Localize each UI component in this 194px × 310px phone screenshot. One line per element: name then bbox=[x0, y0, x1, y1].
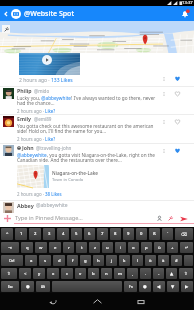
button[interactable]: g bbox=[80, 255, 91, 266]
button[interactable]: 2 bbox=[29, 228, 41, 240]
button[interactable]: 7 bbox=[97, 228, 108, 240]
button[interactable]: n bbox=[101, 268, 112, 279]
button[interactable]: Like bbox=[173, 117, 182, 126]
button[interactable]: John bbox=[0, 144, 194, 197]
staticText: e bbox=[54, 245, 57, 251]
button[interactable]: Back bbox=[43, 293, 63, 310]
button[interactable]: ü bbox=[154, 242, 165, 253]
button[interactable]: 4 bbox=[57, 228, 69, 240]
button[interactable]: Philip bbox=[0, 87, 194, 114]
button[interactable]: Niagara-on-the-Lake bbox=[17, 165, 98, 188]
button[interactable]: Emily bbox=[0, 115, 194, 142]
button[interactable]: x bbox=[47, 268, 59, 279]
button[interactable]: d bbox=[53, 255, 65, 266]
button[interactable]: ↵ bbox=[180, 242, 193, 253]
button[interactable]: ^ bbox=[1, 228, 13, 240]
button[interactable]: c bbox=[61, 268, 73, 279]
button[interactable]: , bbox=[127, 268, 138, 279]
button[interactable]: h bbox=[93, 255, 104, 266]
button[interactable]: < bbox=[19, 268, 31, 279]
button[interactable]: y bbox=[33, 268, 45, 279]
button[interactable]: . bbox=[140, 268, 151, 279]
button[interactable]: v bbox=[75, 268, 86, 279]
button[interactable]: p bbox=[141, 242, 152, 253]
staticText: g bbox=[84, 258, 87, 264]
button[interactable]: More options bbox=[160, 75, 168, 83]
button[interactable]: More options bbox=[160, 90, 168, 98]
button[interactable]: Mention bbox=[155, 214, 164, 223]
button[interactable]: 9 bbox=[123, 228, 134, 240]
button[interactable]: ▼ bbox=[167, 281, 179, 292]
button[interactable]: k bbox=[119, 255, 130, 266]
button[interactable]: 3 bbox=[43, 228, 55, 240]
button[interactable]: l bbox=[132, 255, 143, 266]
button[interactable]: Ctrl bbox=[1, 255, 23, 266]
staticText: 2 bbox=[34, 231, 37, 237]
button[interactable]: t bbox=[76, 242, 87, 253]
button[interactable]: e bbox=[49, 242, 61, 253]
button[interactable]: ä bbox=[158, 255, 169, 266]
button[interactable]: Home bbox=[87, 293, 107, 310]
button[interactable]: Notifications bbox=[176, 6, 194, 21]
button[interactable]: ◀ bbox=[153, 281, 165, 292]
button[interactable]: + bbox=[167, 242, 178, 253]
staticText: ◀ bbox=[157, 284, 161, 289]
button[interactable]: ● bbox=[139, 281, 151, 292]
staticText: Town in Canada bbox=[52, 177, 84, 183]
button[interactable]: j bbox=[106, 255, 117, 266]
staticText: s bbox=[44, 258, 47, 264]
button[interactable]: f bbox=[67, 255, 78, 266]
staticText: 13:37 bbox=[182, 0, 193, 6]
button[interactable]: ß bbox=[149, 228, 160, 240]
button[interactable]: o bbox=[128, 242, 139, 253]
button[interactable]: Alt bbox=[36, 281, 50, 292]
button[interactable]: ⇧ bbox=[179, 268, 193, 279]
button[interactable]: Like bbox=[173, 89, 182, 98]
button[interactable]: s bbox=[39, 255, 51, 266]
button[interactable]: 6 bbox=[84, 228, 95, 240]
button[interactable]: Esc bbox=[1, 281, 19, 292]
button[interactable]: u bbox=[102, 242, 113, 253]
button[interactable]: Like bbox=[173, 74, 182, 83]
staticText: @emi89 bbox=[34, 116, 52, 122]
button[interactable]: r bbox=[63, 242, 74, 253]
button[interactable]: 1 bbox=[15, 228, 27, 240]
button[interactable]: ⌫ bbox=[175, 228, 193, 240]
button[interactable]: More options bbox=[160, 118, 168, 126]
button[interactable]: 5 bbox=[71, 228, 82, 240]
button[interactable] bbox=[184, 255, 193, 266]
button[interactable]: m bbox=[114, 268, 125, 279]
button[interactable]: Like bbox=[173, 146, 182, 155]
staticText: 0 bbox=[140, 231, 143, 237]
button[interactable]: Fn bbox=[124, 281, 137, 292]
button[interactable]: More options bbox=[160, 147, 168, 155]
button[interactable]: ▲ bbox=[166, 268, 177, 279]
button[interactable]: Back bbox=[0, 6, 11, 21]
staticText: ▲ bbox=[170, 271, 174, 276]
button[interactable]: b bbox=[88, 268, 99, 279]
button[interactable]: w bbox=[35, 242, 47, 253]
button[interactable]: q bbox=[21, 242, 33, 253]
button[interactable]: 8 bbox=[110, 228, 121, 240]
button[interactable]: Recent apps bbox=[131, 293, 151, 310]
button[interactable]: i bbox=[115, 242, 126, 253]
button[interactable]: ö bbox=[145, 255, 156, 266]
button[interactable]: a bbox=[25, 255, 37, 266]
button[interactable]: ⇧ bbox=[1, 268, 17, 279]
button[interactable]: Add attachment bbox=[2, 213, 13, 224]
button[interactable]: # bbox=[171, 255, 182, 266]
button[interactable]: Play video bbox=[19, 53, 80, 75]
button[interactable]: ● bbox=[21, 281, 34, 292]
button[interactable]: ´ bbox=[162, 228, 173, 240]
button[interactable]: ⇥ bbox=[1, 242, 19, 253]
button[interactable]: z bbox=[89, 242, 100, 253]
button[interactable]: Send bbox=[178, 213, 189, 224]
button[interactable]: Expand map bbox=[2, 25, 10, 33]
button[interactable]: Pin message bbox=[166, 214, 175, 223]
button[interactable]: - bbox=[153, 268, 164, 279]
button[interactable]: ▶ bbox=[181, 281, 193, 292]
button[interactable]: 0 bbox=[136, 228, 147, 240]
staticText: ´ bbox=[167, 231, 169, 237]
staticText: ● bbox=[143, 284, 147, 289]
button[interactable] bbox=[52, 281, 122, 292]
